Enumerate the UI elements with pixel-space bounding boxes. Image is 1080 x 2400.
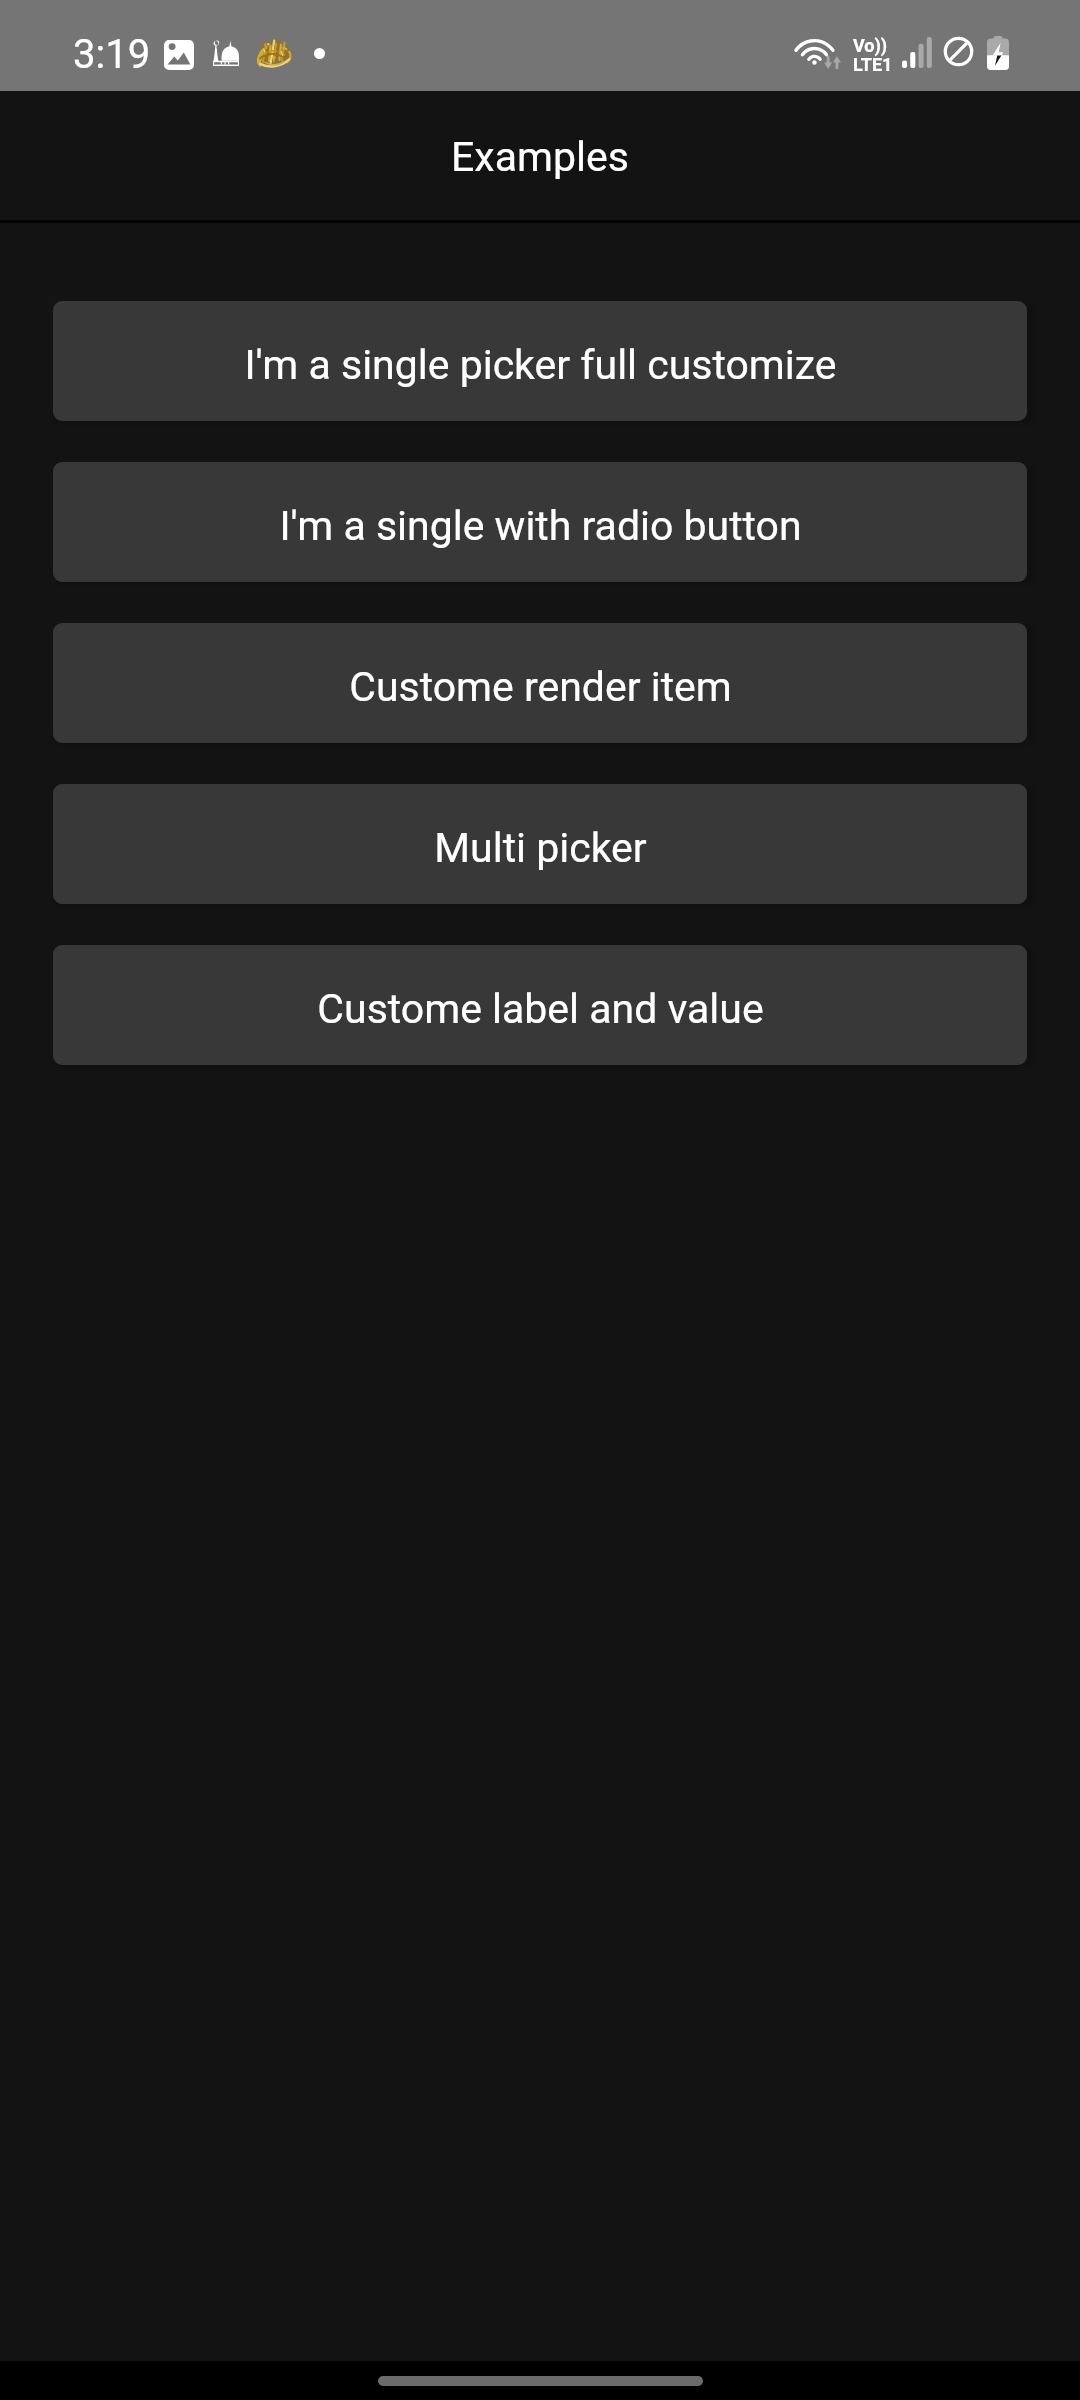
staticText: I'm a single with radio button	[279, 502, 802, 550]
staticText: Examples	[451, 133, 629, 181]
button[interactable]: I'm a single with radio button	[53, 462, 1027, 582]
staticText: Vo))	[853, 35, 888, 56]
button[interactable]: Custome render item	[53, 623, 1027, 743]
button[interactable]: Multi picker	[53, 784, 1027, 904]
staticText: 3:19	[73, 31, 151, 78]
button[interactable]: Custome label and value	[53, 945, 1027, 1065]
staticText: LTE1	[853, 54, 893, 75]
staticText: I'm a single picker full customize	[244, 341, 837, 389]
staticText: Custome render item	[349, 663, 732, 711]
staticText: Multi picker	[434, 824, 647, 872]
staticText: Custome label and value	[317, 985, 764, 1033]
button[interactable]: I'm a single picker full customize	[53, 301, 1027, 421]
